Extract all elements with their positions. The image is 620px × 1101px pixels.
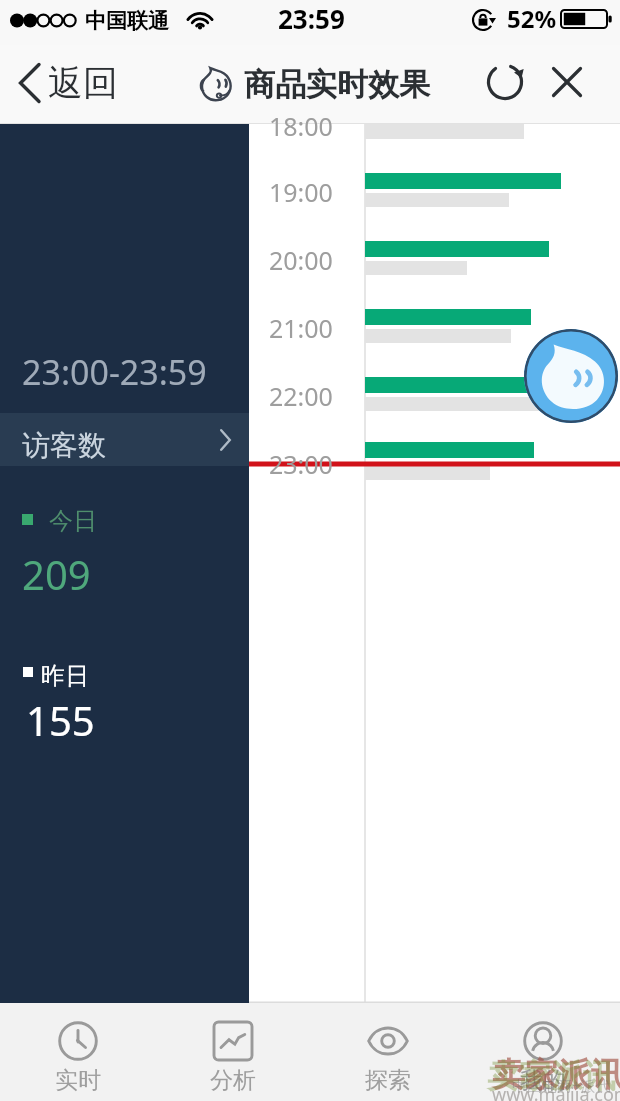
staticText: 18:00 bbox=[269, 109, 333, 143]
staticText: 23:59 bbox=[278, 1, 345, 36]
staticText: www.maijia.com/news bbox=[492, 1082, 620, 1101]
staticText: 21:00 bbox=[269, 311, 333, 345]
staticText: 20:00 bbox=[269, 243, 333, 277]
button[interactable]: 访客数 bbox=[0, 413, 249, 466]
button[interactable]: Close bbox=[541, 56, 593, 108]
staticText: 卖家派讯 bbox=[492, 1054, 620, 1096]
staticText: 今日 bbox=[49, 506, 97, 536]
staticText: 卖家派讯 bbox=[487, 1056, 615, 1096]
staticText: 访客数 bbox=[22, 428, 106, 463]
staticText: 155 bbox=[26, 693, 95, 747]
staticText: 52% bbox=[507, 2, 557, 35]
button[interactable]: 探索 bbox=[310, 1003, 465, 1101]
staticText: 我的 bbox=[520, 1066, 566, 1095]
staticText: 中国电商+派代 bbox=[512, 1075, 611, 1095]
button[interactable]: 分析 bbox=[155, 1003, 310, 1101]
staticText: 19:00 bbox=[269, 175, 333, 209]
staticText: 22:00 bbox=[269, 379, 333, 413]
button[interactable]: 返回 bbox=[8, 55, 130, 111]
staticText: 中国联通 bbox=[85, 8, 169, 34]
button[interactable]: Refresh bbox=[479, 56, 531, 108]
staticText: 209 bbox=[22, 547, 91, 601]
button[interactable]: 我的 bbox=[465, 1003, 620, 1101]
staticText: 分析 bbox=[210, 1066, 256, 1095]
button[interactable]: Assistant bbox=[524, 329, 618, 423]
staticText: 商品实时效果 bbox=[244, 65, 430, 104]
staticText: 探索 bbox=[365, 1066, 411, 1095]
staticText: 23:00-23:59 bbox=[22, 349, 207, 395]
staticText: 23:00 bbox=[269, 447, 333, 481]
button[interactable]: 实时 bbox=[0, 1003, 155, 1101]
staticText: 实时 bbox=[55, 1066, 101, 1095]
staticText: 昨日 bbox=[41, 661, 89, 691]
staticText: 返回 bbox=[48, 61, 118, 105]
